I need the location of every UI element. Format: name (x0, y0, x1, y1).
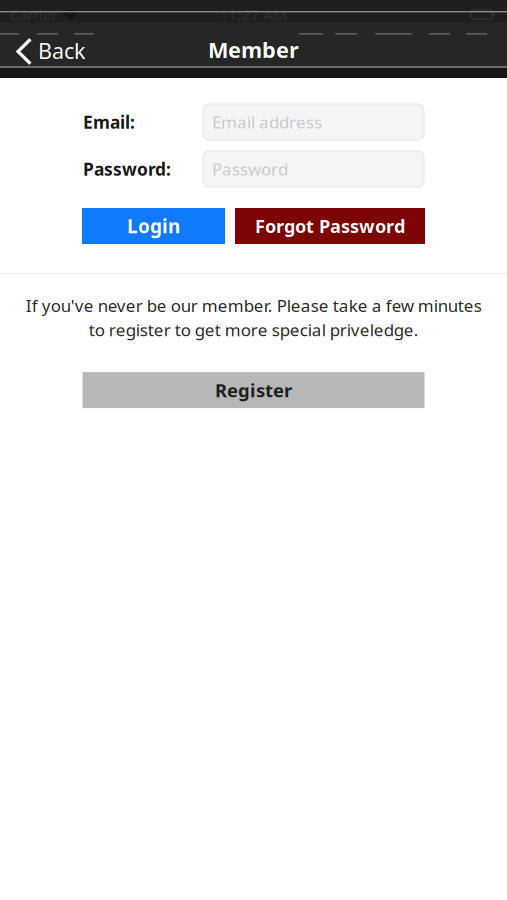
staticText: Email address (212, 110, 322, 134)
button[interactable]: Back (0, 36, 98, 64)
staticText: Forgot Password (255, 214, 405, 238)
staticText: Login (127, 213, 180, 239)
staticText: 11:27 AM (219, 4, 287, 25)
staticText: Password: (83, 157, 171, 181)
staticText: If you've never be our member. Please ta… (25, 294, 481, 341)
staticText: Back (38, 36, 86, 65)
button[interactable]: Password (203, 151, 424, 187)
staticText: Carrier (10, 4, 57, 24)
staticText: Password (212, 157, 288, 181)
staticText: Register (215, 378, 292, 403)
staticText: Member (208, 35, 299, 64)
staticText: Email: (83, 110, 135, 134)
button[interactable]: Email address (203, 104, 424, 140)
button[interactable]: Forgot Password (235, 208, 425, 244)
button[interactable]: Register (82, 372, 424, 408)
button[interactable]: Login (82, 208, 225, 244)
